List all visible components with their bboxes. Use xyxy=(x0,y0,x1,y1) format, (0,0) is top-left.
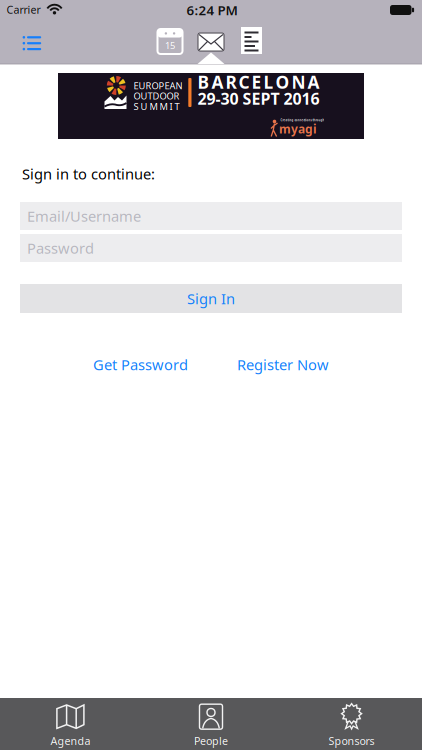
staticText: Creating connections through xyxy=(280,118,324,122)
staticText: myagi xyxy=(279,121,317,137)
button[interactable]: Menu xyxy=(22,36,41,50)
staticText: Register Now xyxy=(237,355,329,374)
button[interactable]: Sign In xyxy=(20,284,402,313)
staticText: EUROPEAN xyxy=(133,79,182,92)
staticText: Email/Username xyxy=(27,206,141,226)
staticText: 29-30 SEPT 2016 xyxy=(197,88,319,109)
button[interactable]: Email/Username xyxy=(20,202,402,230)
staticText: Agenda xyxy=(50,734,90,748)
button[interactable]: Agenda xyxy=(0,698,141,750)
staticText: 6:24 PM xyxy=(186,1,237,19)
staticText: OUTDOOR xyxy=(133,90,179,102)
staticText: Sign in to continue: xyxy=(22,164,155,183)
button[interactable]: Sponsors xyxy=(281,698,422,750)
button[interactable]: Messages xyxy=(198,33,224,51)
staticText: Get Password xyxy=(93,355,188,374)
staticText: S U M M I T xyxy=(133,100,179,112)
button[interactable]: Get Password xyxy=(93,355,188,374)
button[interactable]: People xyxy=(141,698,281,750)
button[interactable]: Password xyxy=(20,234,402,262)
staticText: Password xyxy=(27,238,94,258)
staticText: Carrier xyxy=(6,2,40,17)
button[interactable]: Register Now xyxy=(237,355,329,374)
staticText: Sponsors xyxy=(329,734,375,748)
button[interactable]: Notes xyxy=(241,27,262,54)
button[interactable]: European Outdoor Summit Barcelona banner xyxy=(58,73,364,139)
button[interactable]: Agenda by day xyxy=(157,29,182,54)
staticText: 15 xyxy=(165,39,175,52)
staticText: B A R C E L O N A xyxy=(197,70,319,93)
staticText: People xyxy=(194,734,228,748)
staticText: Sign In xyxy=(187,289,235,308)
